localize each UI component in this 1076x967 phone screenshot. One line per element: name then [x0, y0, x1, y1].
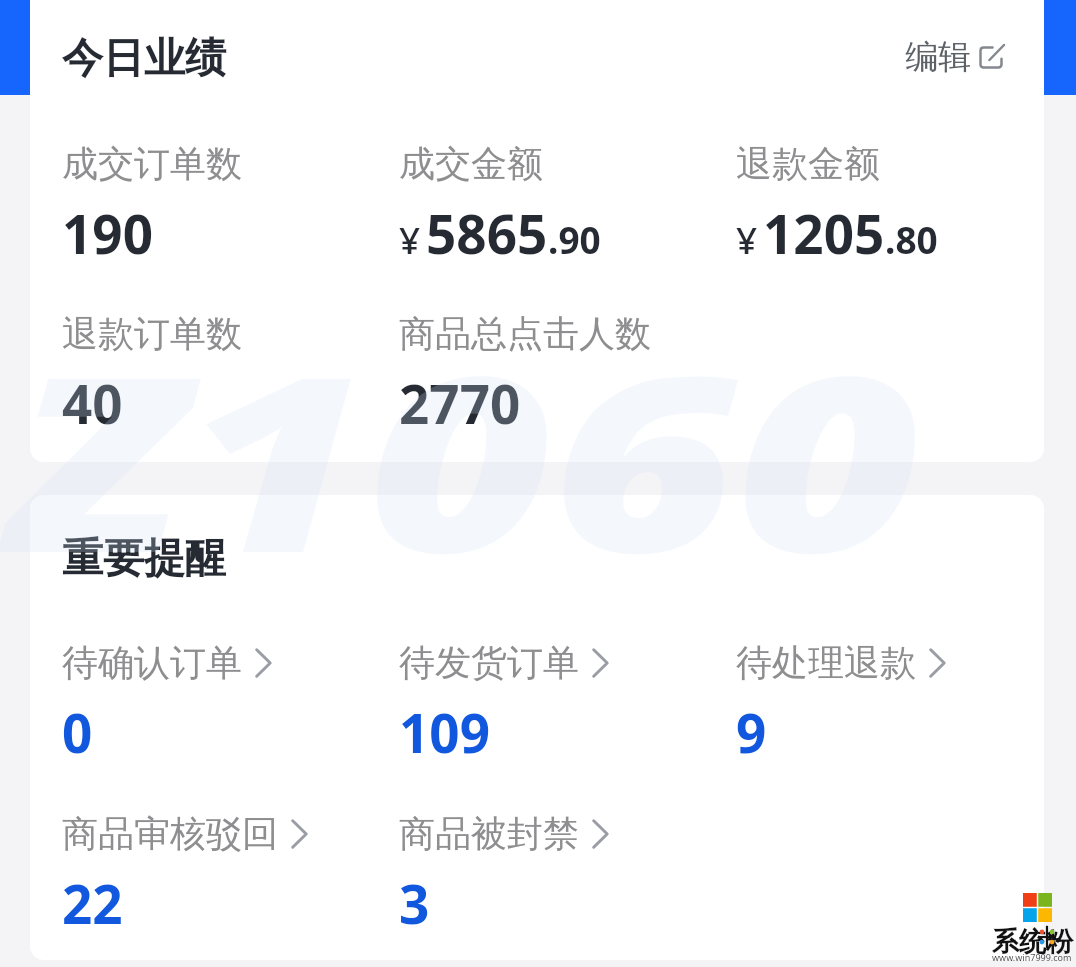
staticText: 退款订单数: [62, 311, 242, 356]
staticText: 商品审核驳回: [62, 811, 278, 856]
button[interactable]: 待确认订单: [62, 632, 399, 770]
staticText: 待发货订单: [399, 640, 579, 685]
staticText: 22: [62, 867, 123, 939]
other: Edit: [978, 45, 1004, 70]
staticText: 109: [399, 696, 490, 768]
staticText: 40: [62, 367, 123, 439]
button[interactable]: 商品被封禁: [399, 803, 736, 941]
staticText: 商品总点击人数: [399, 311, 651, 356]
staticText: 今日业绩: [62, 33, 226, 85]
staticText: 5865: [426, 197, 548, 269]
staticText: 190: [62, 197, 153, 269]
staticText: .80: [885, 214, 938, 264]
staticText: www.win7999.com: [992, 951, 1072, 963]
staticText: 9: [736, 696, 767, 768]
staticText: 编辑: [905, 36, 971, 78]
staticText: 系统粉: [992, 925, 1073, 959]
staticText: ¥: [736, 214, 758, 264]
button[interactable]: 待发货订单: [399, 632, 736, 770]
staticText: 成交订单数: [62, 141, 242, 186]
staticText: 退款金额: [736, 141, 880, 186]
staticText: 待确认订单: [62, 640, 242, 685]
button[interactable]: 编辑: [889, 20, 1020, 94]
staticText: 3: [399, 867, 430, 939]
staticText: 成交金额: [399, 141, 543, 186]
staticText: 1205: [763, 197, 885, 269]
staticText: 2770: [399, 367, 521, 439]
staticText: 0: [62, 696, 93, 768]
staticText: Z1060: [12, 293, 920, 624]
staticText: 重要提醒: [62, 533, 226, 585]
staticText: ¥: [399, 214, 421, 264]
button[interactable]: 待处理退款: [736, 632, 1044, 770]
staticText: .90: [548, 214, 601, 264]
button[interactable]: 商品审核驳回: [62, 803, 399, 941]
staticText: 商品被封禁: [399, 811, 579, 856]
staticText: 待处理退款: [736, 640, 916, 685]
